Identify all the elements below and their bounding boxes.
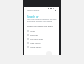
staticText: Settings [30,34,38,37]
button[interactable]: Apps [26,29,57,33]
staticText: More items [30,46,42,49]
staticText: Apps [30,30,35,33]
staticText: Help Centre [27,9,40,12]
button[interactable]: Web result [26,41,57,45]
staticText: Select the items you want [27,25,53,28]
button[interactable]: More options [55,10,57,12]
button[interactable]: Contacts files [26,37,57,41]
staticText: Search or [27,15,39,19]
staticText: Contacts files [30,38,44,41]
staticText: and find results you need [27,20,52,23]
staticText: You can search quickly on you [27,18,57,21]
button[interactable]: Settings [26,33,57,37]
button[interactable]: Search [47,7,55,10]
button[interactable]: More items [26,45,57,49]
staticText: Web result [30,42,41,45]
